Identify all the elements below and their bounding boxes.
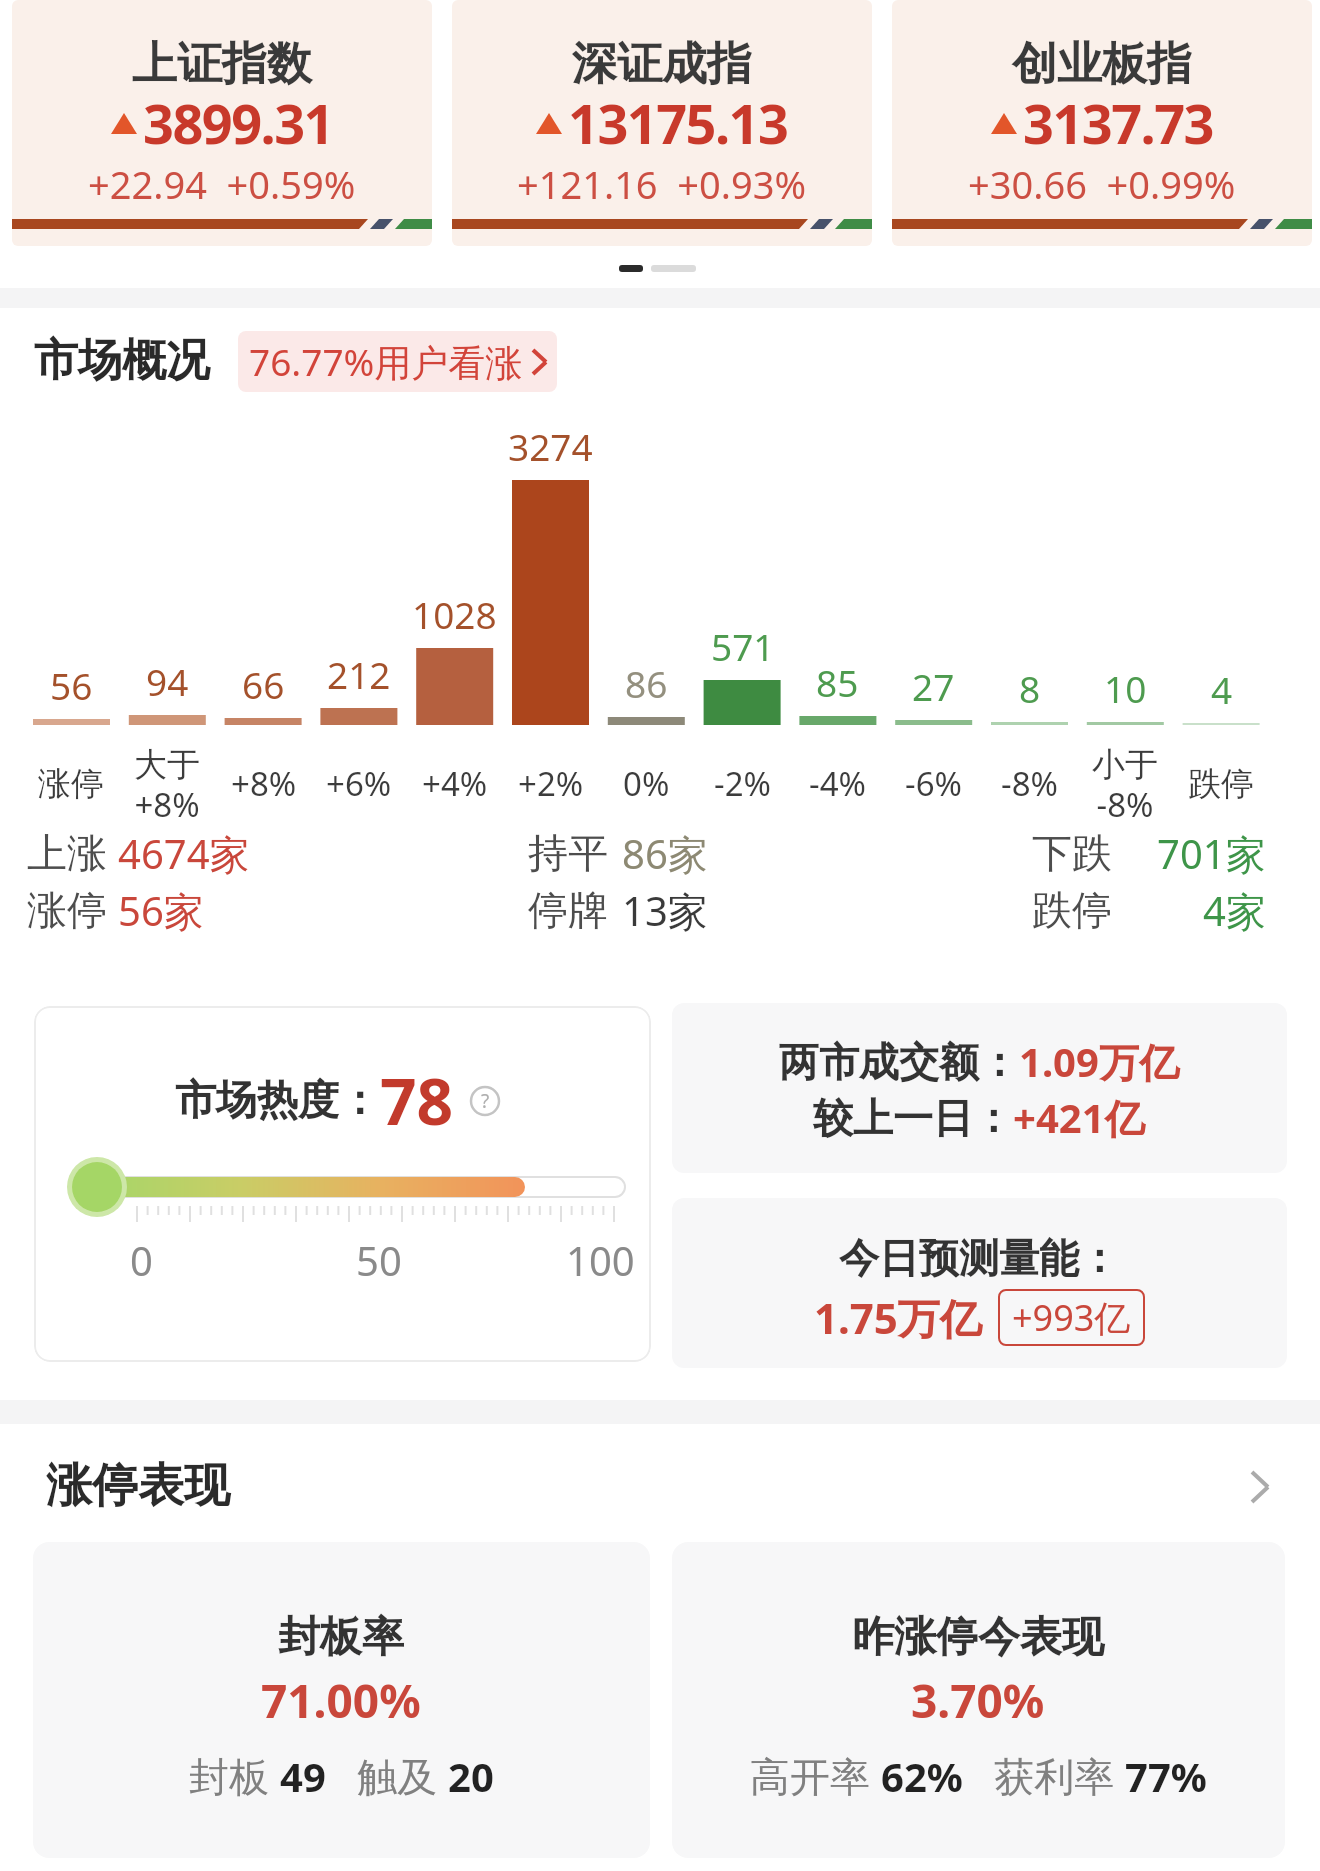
button[interactable]: 上证指数	[12, 0, 432, 246]
staticText: 0%	[623, 761, 670, 806]
staticText: 封板	[189, 1748, 280, 1803]
staticText: 跌停	[1188, 763, 1254, 805]
staticText: 62%	[881, 1749, 963, 1803]
staticText: 市场概况	[34, 333, 210, 388]
button[interactable]	[672, 1003, 1287, 1173]
staticText: 0	[130, 1233, 153, 1287]
staticText: +421亿	[1013, 1090, 1145, 1145]
staticText: 78	[380, 1057, 454, 1144]
staticText: 76.77%用户看涨	[249, 336, 523, 387]
staticText: 较上一日：	[813, 1093, 1013, 1143]
staticText: 8	[1019, 663, 1041, 713]
staticText: 3.70%	[911, 1669, 1045, 1732]
button[interactable]: 76.77%用户看涨	[238, 331, 557, 392]
staticText: +993亿	[1012, 1293, 1131, 1342]
button[interactable]	[672, 1542, 1285, 1858]
staticText: 10	[1104, 663, 1147, 713]
staticText: 27	[912, 661, 955, 711]
staticText: 创业板指	[1012, 36, 1192, 93]
staticText: 上涨	[27, 828, 107, 878]
staticText: 94	[146, 656, 189, 706]
staticText: 涨停	[38, 763, 104, 805]
staticText: 3274	[508, 421, 593, 471]
button[interactable]	[0, 1440, 1320, 1530]
staticText: +8%	[231, 761, 297, 806]
staticText: 85	[816, 657, 859, 707]
staticText: 13175.13	[568, 86, 788, 160]
button[interactable]	[33, 1542, 650, 1858]
staticText: 两市成交额：	[779, 1037, 1019, 1087]
staticText: 深证成指	[572, 36, 752, 93]
button[interactable]: 创业板指	[892, 0, 1312, 246]
staticText: 跌停	[1032, 885, 1112, 935]
staticText: -8%	[1001, 761, 1058, 806]
staticText: 20	[448, 1749, 494, 1803]
staticText: 3137.73	[1023, 86, 1214, 160]
button[interactable]: 深证成指	[452, 0, 872, 246]
staticText: +121.16 +0.93%	[517, 158, 807, 210]
staticText: 大于 +8%	[134, 744, 200, 824]
staticText: 今日预测量能：	[839, 1233, 1119, 1283]
staticText: 56家	[118, 883, 204, 938]
staticText: +2%	[518, 761, 584, 806]
staticText: 1.09万亿	[1019, 1034, 1179, 1089]
staticText: +4%	[422, 761, 488, 806]
button[interactable]	[34, 1006, 651, 1362]
staticText: 50	[356, 1233, 402, 1287]
staticText: ?	[481, 1088, 490, 1114]
staticText: -2%	[714, 761, 771, 806]
staticText: +6%	[326, 761, 392, 806]
staticText: 701家	[1157, 826, 1266, 881]
staticText: 昨涨停今表现	[852, 1611, 1104, 1664]
staticText: 571	[711, 621, 775, 671]
staticText: 212	[327, 649, 391, 699]
staticText: 涨停	[27, 885, 107, 935]
staticText: 涨停表现	[46, 1457, 230, 1515]
staticText: 3899.31	[143, 86, 334, 160]
staticText: 触及	[326, 1748, 448, 1803]
staticText: 高开率	[750, 1748, 881, 1803]
staticText: 4家	[1203, 883, 1266, 938]
staticText: 86	[625, 658, 668, 708]
staticText: 66	[242, 659, 285, 709]
staticText: 4674家	[118, 826, 250, 881]
staticText: 49	[280, 1749, 326, 1803]
staticText: 86家	[622, 826, 708, 881]
staticText: 71.00%	[261, 1669, 421, 1732]
staticText: 1.75万亿	[814, 1289, 982, 1346]
staticText: 100	[566, 1233, 635, 1287]
staticText: +30.66 +0.99%	[968, 158, 1236, 210]
staticText: 封板率	[278, 1611, 404, 1664]
staticText: -4%	[809, 761, 866, 806]
staticText: 56	[50, 660, 93, 710]
staticText: 获利率	[963, 1748, 1125, 1803]
button[interactable]	[672, 1198, 1287, 1368]
staticText: 13家	[622, 883, 708, 938]
staticText: -6%	[905, 761, 962, 806]
staticText: 1028	[412, 589, 497, 639]
staticText: 上证指数	[132, 36, 312, 93]
staticText: 停牌	[528, 885, 608, 935]
staticText: +22.94 +0.59%	[88, 158, 356, 210]
staticText: 小于 -8%	[1092, 744, 1158, 824]
staticText: 市场热度：	[175, 1075, 380, 1127]
staticText: 持平	[528, 828, 608, 878]
staticText: 下跌	[1032, 828, 1112, 878]
staticText: 77%	[1125, 1749, 1207, 1803]
staticText: 4	[1211, 664, 1233, 714]
